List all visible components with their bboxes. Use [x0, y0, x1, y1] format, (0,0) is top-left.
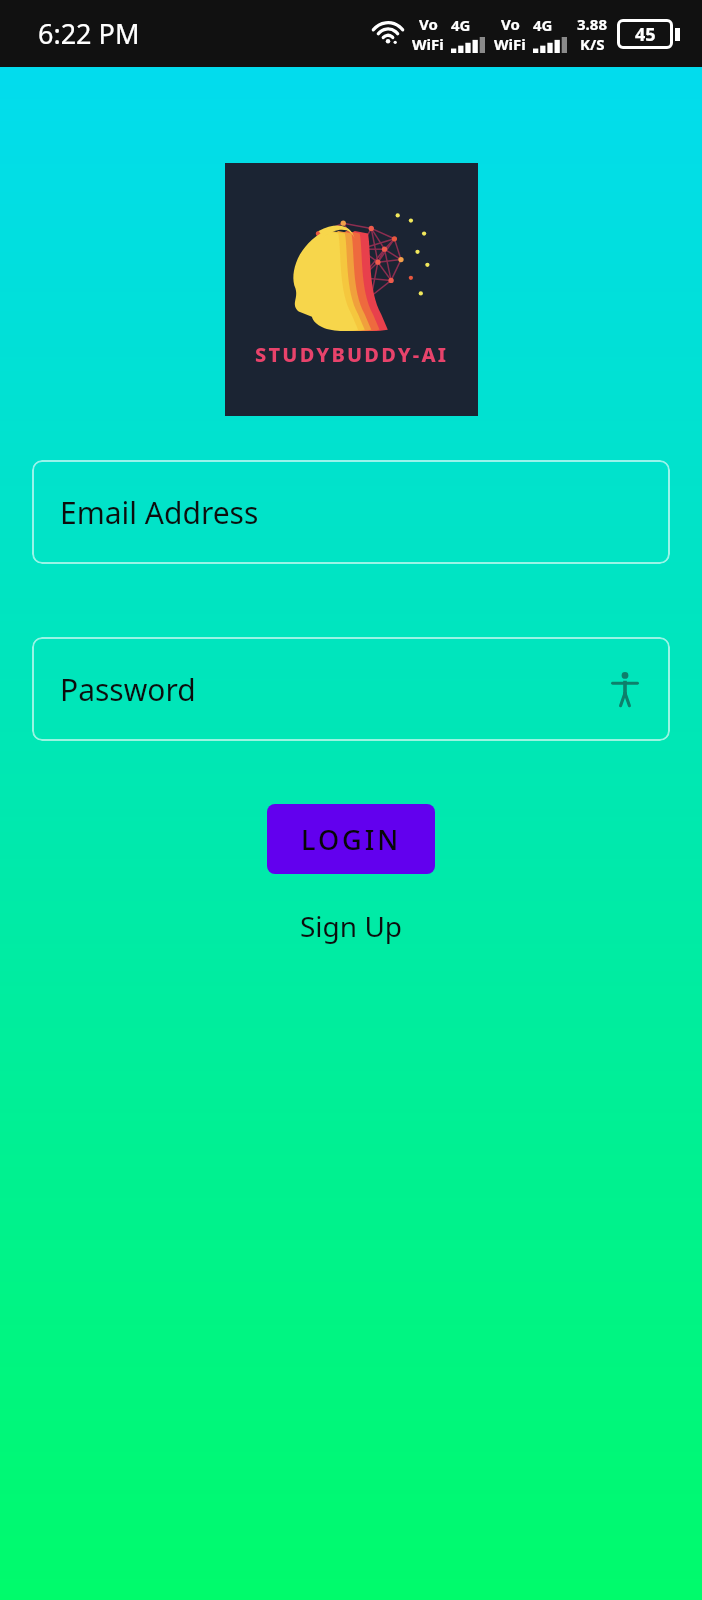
staticText: Sign Up: [300, 907, 403, 945]
other: Accessibility options: [612, 672, 638, 706]
staticText: WiFi: [494, 34, 526, 54]
staticText: Vo: [501, 14, 520, 34]
button[interactable]: LOGIN: [267, 804, 435, 874]
button[interactable]: Email Address: [32, 460, 670, 564]
staticText: 4G: [451, 15, 471, 35]
staticText: K/S: [580, 34, 605, 54]
staticText: STUDYBUDDY-AI: [255, 341, 449, 368]
staticText: LOGIN: [301, 821, 402, 858]
staticText: WiFi: [412, 34, 444, 54]
staticText: Password: [60, 669, 196, 710]
staticText: Vo: [419, 14, 438, 34]
staticText: 4G: [533, 15, 553, 35]
staticText: 6:22 PM: [38, 15, 140, 52]
button[interactable]: Sign Up: [288, 901, 415, 951]
staticText: 3.88: [577, 14, 607, 34]
staticText: 45: [635, 22, 656, 47]
button[interactable]: Password: [32, 637, 670, 741]
staticText: Email Address: [60, 492, 259, 533]
